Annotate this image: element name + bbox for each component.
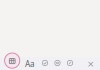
staticText: Aa — [25, 59, 35, 69]
button[interactable]: Attachments — [51, 57, 63, 69]
button[interactable]: Markup — [64, 57, 76, 69]
button[interactable]: Aa — [23, 57, 37, 70]
button[interactable]: Checklist — [39, 57, 51, 69]
button[interactable]: Table — [3, 52, 21, 70]
button[interactable]: Close — [85, 58, 97, 70]
